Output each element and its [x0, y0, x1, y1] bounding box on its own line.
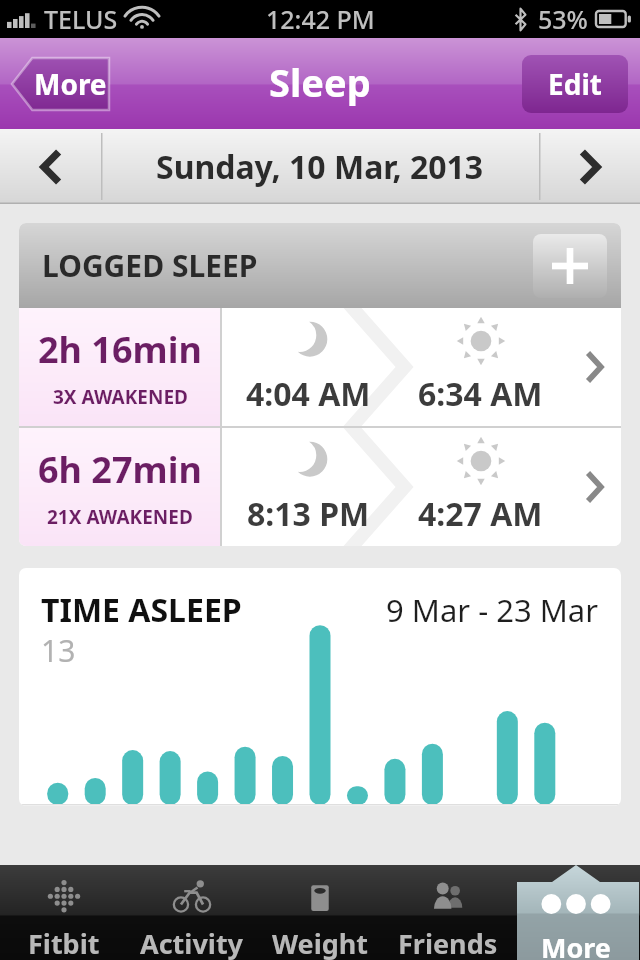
- staticText: 13: [41, 630, 76, 671]
- staticText: 6:34 AM: [418, 372, 543, 416]
- button[interactable]: 2h 16min: [19, 308, 621, 426]
- staticText: 4:27 AM: [418, 492, 543, 536]
- staticText: Sunday, 10 Mar, 2013: [156, 145, 484, 189]
- staticText: More: [541, 929, 611, 960]
- button[interactable]: More: [512, 865, 640, 960]
- staticText: 3X AWAKENED: [53, 384, 188, 410]
- staticText: Sleep: [269, 56, 371, 108]
- staticText: 2h 16min: [38, 325, 202, 374]
- staticText: 9 Mar - 23 Mar: [386, 589, 599, 631]
- button[interactable]: More: [9, 55, 115, 113]
- staticText: Fitbit: [28, 925, 100, 960]
- button[interactable]: Edit: [522, 55, 628, 113]
- staticText: 4:04 AM: [246, 372, 371, 416]
- staticText: More: [34, 65, 107, 103]
- staticText: Weight: [272, 925, 369, 960]
- staticText: Activity: [140, 925, 244, 960]
- staticText: 21X AWAKENED: [47, 504, 193, 530]
- button[interactable]: Friends: [384, 865, 512, 960]
- staticText: TELUS: [44, 2, 118, 36]
- button[interactable]: Activity: [128, 865, 256, 960]
- button[interactable]: Fitbit: [0, 865, 128, 960]
- staticText: TIME ASLEEP: [41, 588, 242, 632]
- button[interactable]: Next day: [540, 129, 640, 204]
- staticText: 6h 27min: [38, 445, 202, 494]
- button[interactable]: Previous day: [0, 129, 101, 204]
- staticText: 53%: [538, 2, 588, 36]
- staticText: 8:13 PM: [247, 492, 370, 536]
- button[interactable]: 6h 27min: [19, 428, 621, 546]
- staticText: 12:42 PM: [266, 2, 375, 36]
- button[interactable]: Add sleep log: [533, 234, 607, 298]
- staticText: LOGGED SLEEP: [42, 245, 258, 286]
- button[interactable]: Weight: [256, 865, 384, 960]
- button[interactable]: TIME ASLEEP: [19, 568, 621, 806]
- staticText: Edit: [548, 65, 602, 103]
- staticText: Friends: [398, 925, 498, 960]
